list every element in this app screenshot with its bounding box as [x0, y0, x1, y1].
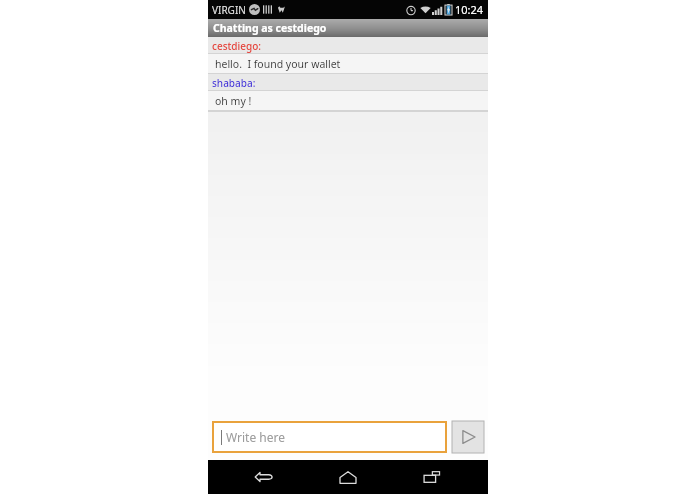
staticText: 10:24	[455, 2, 484, 17]
button[interactable]: hello. I found your wallet	[208, 54, 488, 74]
button[interactable]: oh my !	[208, 91, 488, 111]
button[interactable]: Write here	[214, 423, 445, 451]
button[interactable]: Recents	[404, 460, 460, 494]
button[interactable]: Send	[452, 421, 484, 453]
staticText: cestdiego:	[212, 39, 262, 53]
button[interactable]: cestdiego:	[208, 37, 488, 54]
staticText: shababa:	[212, 76, 256, 90]
button[interactable]: Back	[236, 460, 292, 494]
staticText: hello. I found your wallet	[215, 57, 341, 71]
staticText: oh my !	[215, 94, 252, 108]
staticText: Chatting as cestdiego	[213, 21, 327, 35]
staticText: VIRGIN	[212, 3, 246, 17]
button[interactable]: shababa:	[208, 74, 488, 91]
button[interactable]: Home	[320, 460, 376, 494]
staticText: Write here	[226, 429, 285, 445]
